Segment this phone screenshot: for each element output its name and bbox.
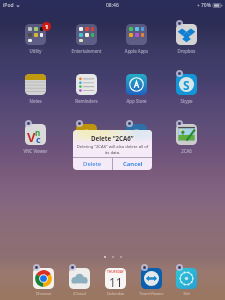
button[interactable]: Delete app	[69, 264, 76, 271]
staticText: iCloud	[61, 291, 98, 297]
button[interactable]: Apple Apps	[118, 24, 155, 45]
staticText: 08:46	[106, 2, 119, 9]
staticText: 11	[109, 274, 123, 289]
button[interactable]: Delete app	[141, 264, 148, 271]
staticText: Skype	[168, 98, 205, 104]
staticText: Cancel	[123, 160, 143, 168]
staticText: V	[27, 128, 36, 145]
staticText: Utility	[17, 48, 54, 54]
button[interactable]: Delete app	[68, 124, 105, 145]
staticText: 1	[45, 23, 49, 31]
staticText: THURSDAY	[107, 270, 124, 274]
staticText: Delete “2CA6”	[91, 134, 134, 142]
button[interactable]: Delete app	[118, 124, 155, 145]
button[interactable]: Delete app	[168, 24, 205, 45]
button[interactable]: 1	[17, 24, 54, 45]
staticText: Notes	[17, 98, 54, 104]
staticText: Chrome	[25, 291, 62, 297]
button[interactable]: Notes	[17, 74, 54, 95]
button[interactable]: Delete app	[133, 268, 170, 289]
button[interactable]: Delete app	[168, 124, 205, 145]
button[interactable]: THURSDAY	[97, 268, 134, 289]
button[interactable]: V	[17, 124, 54, 145]
button[interactable]: S	[168, 74, 205, 95]
staticText: App Store	[118, 98, 155, 104]
staticText: VNC Viewer	[17, 148, 54, 154]
staticText: iPod	[3, 2, 14, 9]
button[interactable]: Delete app	[25, 268, 62, 289]
button[interactable]: Entertainment	[68, 24, 105, 45]
button[interactable]: Delete app	[33, 264, 40, 271]
staticText: 70%	[201, 2, 211, 9]
button[interactable]: Reminders	[68, 74, 105, 95]
button[interactable]: App Store	[118, 74, 155, 95]
button[interactable]: Delete app	[168, 268, 205, 289]
button[interactable]: Delete app	[76, 120, 83, 127]
button[interactable]: Delete app	[126, 120, 133, 127]
staticText: TeamViewer	[133, 291, 170, 297]
staticText: S	[183, 77, 190, 93]
staticText: Calendar	[97, 291, 134, 297]
staticText: 2CA6	[168, 148, 205, 154]
button[interactable]: Delete app	[176, 20, 183, 27]
button[interactable]: Delete app	[176, 70, 183, 77]
staticText: Reminders	[68, 98, 105, 104]
staticText: Entertainment	[68, 48, 105, 54]
staticText: Delete	[83, 160, 102, 168]
button[interactable]: Delete app	[176, 120, 183, 127]
staticText: Apple Apps	[118, 48, 155, 54]
staticText: n	[35, 127, 41, 138]
button[interactable]: Delete app	[25, 120, 32, 127]
staticText: Siri	[168, 291, 205, 297]
button[interactable]: Cancel	[113, 158, 152, 170]
staticText: Dropbox	[168, 48, 205, 54]
staticText: c	[36, 133, 41, 145]
staticText: Deleting “2CA6” will also delete all of …	[76, 144, 149, 155]
button[interactable]: Delete app	[176, 264, 183, 271]
button[interactable]: Delete	[73, 158, 112, 170]
button[interactable]: Delete app	[61, 268, 98, 289]
